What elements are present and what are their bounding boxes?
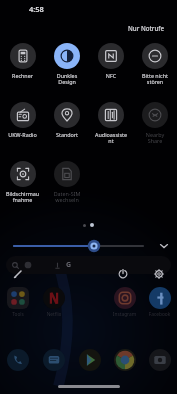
staticText: Facebook: [142, 311, 177, 318]
staticText: Bitte nicht stören: [134, 72, 176, 86]
button[interactable]: Instagram: [107, 287, 142, 325]
button[interactable]: msg: [36, 347, 72, 373]
button[interactable]: Audioassiste nt: [89, 99, 133, 158]
button[interactable]: chrome: [107, 347, 142, 373]
staticText: NFC: [90, 72, 132, 79]
staticText: G: [66, 260, 72, 270]
button[interactable]: Daten-SIM wechseln: [45, 158, 89, 217]
button[interactable]: NFC: [89, 40, 133, 99]
button[interactable]: Nearby Share: [133, 99, 177, 158]
staticText: Nearby Share: [134, 131, 176, 145]
button[interactable]: phone: [0, 347, 36, 373]
button[interactable]: Settings: [149, 264, 169, 284]
button[interactable]: Edit tiles: [8, 264, 28, 284]
staticText: Daten-SIM wechseln: [46, 190, 88, 204]
button[interactable]: Bildschirmau fnahme: [0, 158, 45, 217]
staticText: Rechner: [1, 72, 44, 79]
button[interactable]: Bitte nicht stören: [133, 40, 177, 99]
staticText: Audioassiste nt: [90, 131, 132, 145]
staticText: Instagram: [107, 311, 142, 318]
staticText: 4:58: [29, 4, 44, 14]
staticText: Dunkles Design: [46, 72, 88, 86]
button[interactable]: Rechner: [0, 40, 45, 99]
button[interactable]: Tools: [0, 287, 36, 325]
button[interactable]: Facebook: [142, 287, 177, 325]
staticText: Nur Notrufe: [128, 24, 165, 32]
button[interactable]: UKW-Radio: [0, 99, 45, 158]
button[interactable]: cam: [142, 347, 177, 373]
button[interactable]: Power: [113, 264, 133, 284]
staticText: Standort: [46, 131, 88, 138]
staticText: Bildschirmau fnahme: [1, 190, 44, 204]
button[interactable]: Expand: [151, 235, 177, 257]
staticText: Netflix: [36, 311, 72, 318]
button[interactable]: play: [72, 347, 107, 373]
button[interactable]: Brightness: [14, 235, 143, 257]
button[interactable]: Standort: [45, 99, 89, 158]
button[interactable]: Dunkles Design: [45, 40, 89, 99]
staticText: UKW-Radio: [1, 131, 44, 138]
button[interactable]: Netflix: [36, 287, 72, 325]
button[interactable]: G: [6, 256, 171, 274]
staticText: Tools: [0, 311, 36, 318]
